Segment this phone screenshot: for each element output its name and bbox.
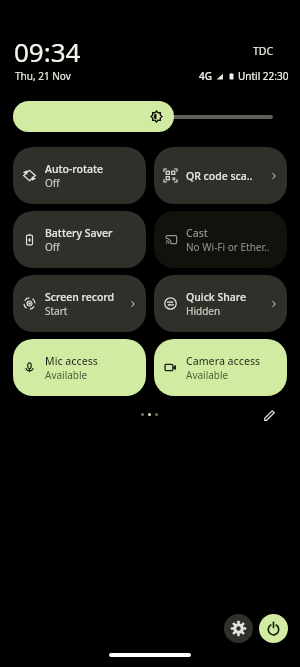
staticText: 4G	[199, 69, 212, 83]
button[interactable]: Mic access	[13, 339, 146, 396]
staticText: No Wi-Fi or Ether..	[186, 240, 270, 254]
staticText: Quick Share	[186, 290, 247, 304]
staticText: Off	[45, 240, 60, 254]
button[interactable]: Auto-rotate	[13, 147, 146, 204]
staticText: Off	[45, 176, 60, 190]
staticText: Mic access	[45, 354, 98, 368]
button[interactable]: Screen record	[13, 275, 146, 332]
staticText: Battery Saver	[45, 226, 113, 240]
staticText: Hidden	[186, 304, 221, 318]
staticText: TDC	[253, 44, 274, 58]
button[interactable]: Settings	[224, 614, 253, 643]
button[interactable]: QR code sca..	[154, 147, 287, 204]
button[interactable]: Battery Saver	[13, 211, 146, 268]
staticText: 09:34	[14, 34, 81, 69]
staticText: Available	[45, 368, 88, 382]
staticText: Camera access	[186, 354, 261, 368]
button[interactable]: Edit	[259, 404, 281, 426]
button[interactable]: Camera access	[154, 339, 287, 396]
button[interactable]: Power	[259, 614, 288, 643]
button[interactable]: Cast	[154, 211, 287, 268]
staticText: Thu, 21 Nov	[15, 69, 71, 83]
staticText: Until 22:30	[238, 69, 289, 83]
staticText: Cast	[186, 226, 208, 240]
staticText: QR code sca..	[186, 169, 253, 183]
button[interactable]: Brightness	[13, 101, 174, 132]
staticText: Available	[186, 368, 229, 382]
staticText: Screen record	[45, 290, 115, 304]
staticText: Auto-rotate	[45, 162, 103, 176]
button[interactable]: Quick Share	[154, 275, 287, 332]
staticText: Start	[45, 304, 68, 318]
